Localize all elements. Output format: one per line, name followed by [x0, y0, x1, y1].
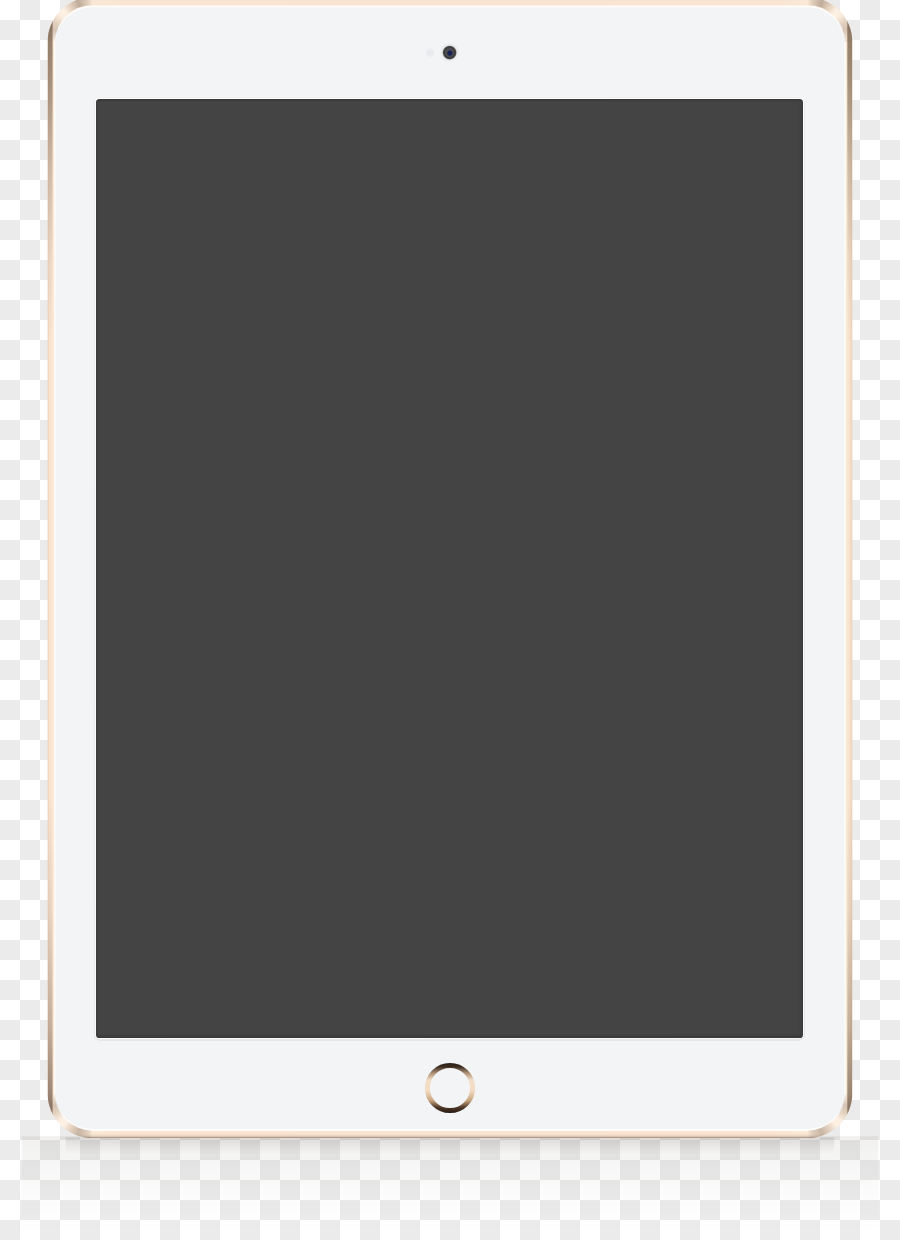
button[interactable]: Home: [424, 1062, 476, 1114]
